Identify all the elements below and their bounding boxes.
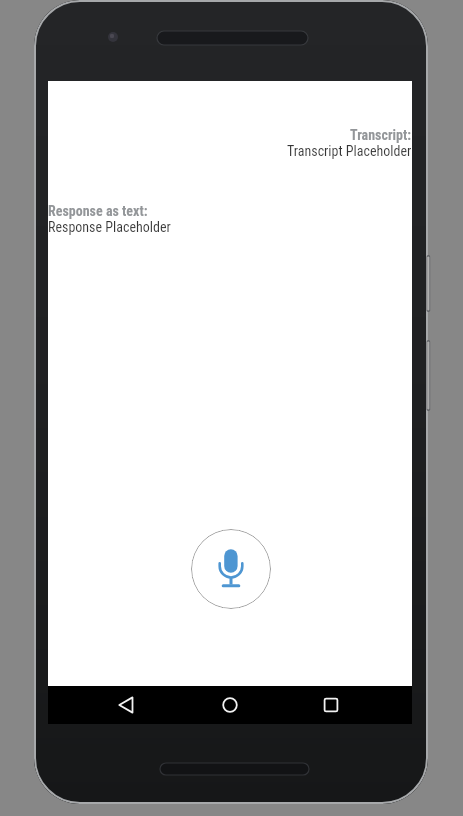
staticText: Response as text: [48, 203, 148, 219]
button[interactable] [107, 686, 145, 724]
button[interactable] [312, 686, 350, 724]
staticText: Transcript: [350, 127, 412, 143]
button[interactable] [191, 529, 271, 609]
button[interactable] [211, 686, 249, 724]
staticText: Response Placeholder [48, 219, 171, 235]
staticText: Transcript Placeholder [287, 143, 412, 159]
